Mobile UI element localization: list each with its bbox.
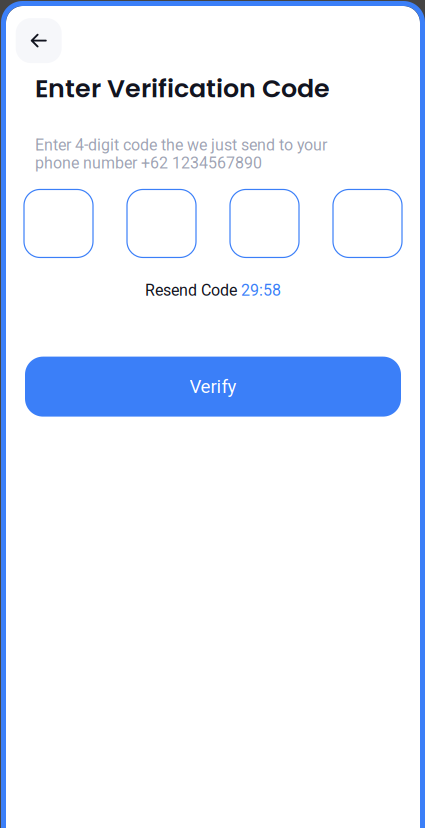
staticText: Enter 4-digit code the we just send to y… xyxy=(35,136,327,154)
staticText: Enter Verification Code xyxy=(35,71,330,106)
staticText: phone number +62 1234567890 xyxy=(35,154,262,172)
button[interactable]: Back xyxy=(16,18,62,63)
staticText: 29:58 xyxy=(241,281,281,300)
button[interactable]: Verify xyxy=(25,357,401,417)
staticText: Resend Code xyxy=(145,281,237,300)
staticText: Verify xyxy=(189,376,236,398)
button[interactable]: Resend Code xyxy=(145,281,281,300)
